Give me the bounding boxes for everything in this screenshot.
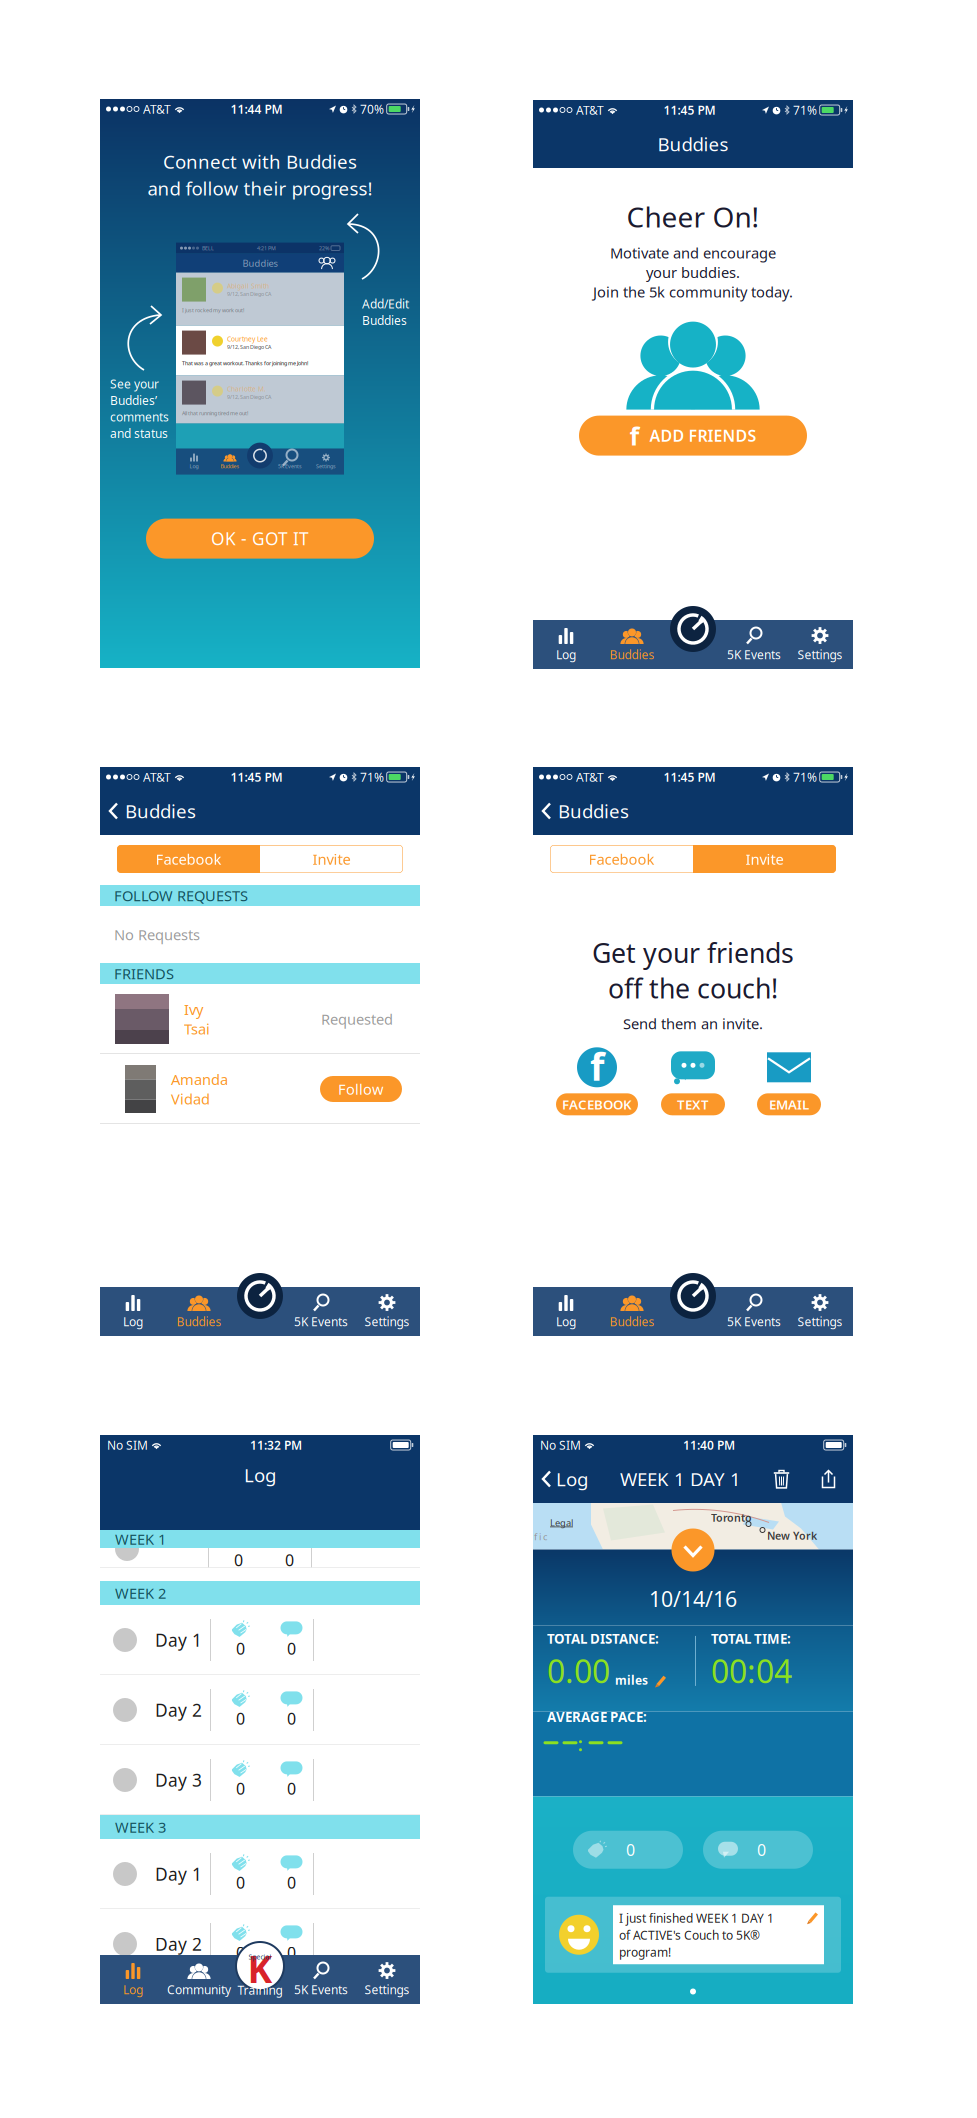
- staticText: Courtney Lee: [227, 335, 268, 343]
- button[interactable]: TEXT: [645, 1047, 741, 1115]
- button[interactable]: f: [579, 416, 807, 456]
- staticText: Log: [556, 1467, 588, 1491]
- staticText: Day 1: [155, 1628, 202, 1651]
- button[interactable]: OK - GOT IT: [146, 519, 374, 559]
- button[interactable]: Timer: [670, 606, 716, 652]
- staticText: 5K Events: [278, 462, 302, 470]
- button[interactable]: 5K Events: [721, 620, 787, 669]
- button[interactable]: Facebook: [117, 845, 260, 873]
- button[interactable]: Amanda: [100, 1054, 420, 1124]
- button[interactable]: Buddies: [100, 799, 196, 823]
- button[interactable]: Facebook: [550, 845, 693, 873]
- button[interactable]: Log: [533, 1287, 599, 1336]
- staticText: FACEBOOK: [562, 1095, 632, 1113]
- staticText: Send them an invite.: [623, 1014, 763, 1033]
- staticText: K: [247, 1944, 272, 1993]
- staticText: 11:45 PM: [663, 769, 715, 785]
- button[interactable]: 0: [573, 1831, 683, 1869]
- button[interactable]: Buddies: [599, 1287, 665, 1336]
- staticText: 0: [236, 1778, 245, 1799]
- button[interactable]: Buddies: [599, 620, 665, 669]
- button[interactable]: Settings: [787, 620, 853, 669]
- staticText: Settings: [364, 1981, 409, 1997]
- staticText: 9/12, San Diego CA: [227, 343, 271, 350]
- staticText: Buddies: [176, 1313, 221, 1329]
- staticText: Log: [189, 462, 198, 470]
- button[interactable]: Day 1: [100, 1605, 420, 1675]
- button[interactable]: Community: [166, 1955, 232, 2004]
- staticText: BELL: [202, 244, 214, 252]
- staticText: Amanda: [171, 1069, 228, 1089]
- button[interactable]: Invite: [260, 845, 403, 873]
- button[interactable]: Day 2: [100, 1675, 420, 1745]
- button[interactable]: Buddies: [533, 799, 629, 823]
- button[interactable]: Timer: [237, 1273, 283, 1319]
- staticText: and status: [110, 425, 168, 441]
- button[interactable]: 5K Events: [721, 1287, 787, 1336]
- staticText: f i c: [534, 1530, 547, 1543]
- staticText: 70%: [360, 101, 384, 117]
- staticText: 00:04: [711, 1649, 792, 1692]
- staticText: Buddies: [609, 646, 654, 662]
- button[interactable]: Settings: [354, 1287, 420, 1336]
- button[interactable]: Training: [235, 1941, 285, 1991]
- button[interactable]: f: [549, 1047, 645, 1115]
- staticText: Day 3: [155, 1768, 202, 1791]
- staticText: AVERAGE PACE:: [547, 1708, 647, 1726]
- staticText: TOTAL TIME:: [711, 1630, 791, 1647]
- staticText: Charlotte M.: [227, 385, 266, 393]
- staticText: Log: [123, 1981, 143, 1997]
- staticText: 0: [236, 1942, 245, 1963]
- staticText: Abigail Smith: [227, 282, 269, 290]
- staticText: Invite: [312, 849, 350, 869]
- button[interactable]: Settings: [354, 1955, 420, 2004]
- staticText: AT&T: [143, 769, 171, 785]
- button[interactable]: Log: [533, 1467, 588, 1491]
- button[interactable]: Timer: [670, 1273, 716, 1319]
- staticText: Add/Edit: [362, 296, 409, 312]
- staticText: WEEK 3: [115, 1817, 166, 1837]
- staticText: 11:32 PM: [250, 1437, 302, 1453]
- button[interactable]: Delete: [773, 1468, 790, 1489]
- staticText: Legal: [550, 1516, 573, 1529]
- staticText: TEXT: [677, 1095, 709, 1113]
- button[interactable]: Ivy: [100, 984, 420, 1054]
- staticText: 5K Events: [294, 1313, 348, 1329]
- staticText: 0: [287, 1638, 296, 1659]
- button[interactable]: Day 1: [100, 1839, 420, 1909]
- staticText: Requested: [321, 1009, 393, 1029]
- button[interactable]: 0: [703, 1831, 813, 1869]
- button[interactable]: EMAIL: [741, 1047, 837, 1115]
- button[interactable]: 5K Events: [288, 1287, 354, 1336]
- button[interactable]: Log: [533, 620, 599, 669]
- staticText: No SIM: [540, 1437, 581, 1453]
- staticText: off the couch!: [608, 970, 778, 1006]
- staticText: Vidad: [171, 1089, 210, 1108]
- staticText: Log: [556, 646, 576, 662]
- staticText: Follow: [338, 1079, 384, 1099]
- button[interactable]: Day 2: [100, 1909, 420, 1979]
- staticText: 71%: [793, 769, 817, 785]
- staticText: Special: [248, 1953, 271, 1961]
- button[interactable]: Day 3: [100, 1745, 420, 1815]
- button[interactable]: Log: [100, 1287, 166, 1336]
- button[interactable]: 5K Events: [288, 1955, 354, 2004]
- staticText: No Requests: [114, 925, 200, 944]
- staticText: Buddies: [242, 257, 277, 269]
- staticText: your buddies.: [646, 263, 740, 282]
- button[interactable]: Buddies: [166, 1287, 232, 1336]
- staticText: 0: [287, 1872, 296, 1893]
- button[interactable]: Invite: [693, 845, 836, 873]
- staticText: Log: [123, 1313, 143, 1329]
- button[interactable]: Share: [820, 1468, 837, 1490]
- staticText: 0: [626, 1839, 635, 1860]
- staticText: EMAIL: [769, 1095, 809, 1113]
- staticText: Day 2: [155, 1698, 202, 1721]
- button[interactable]: Log: [100, 1955, 166, 2004]
- staticText: Settings: [797, 646, 842, 662]
- button[interactable]: Settings: [787, 1287, 853, 1336]
- button[interactable]: Expand map: [671, 1528, 714, 1571]
- staticText: 5K Events: [294, 1981, 348, 1997]
- staticText: 11:45 PM: [230, 769, 282, 785]
- staticText: Log: [244, 1463, 276, 1487]
